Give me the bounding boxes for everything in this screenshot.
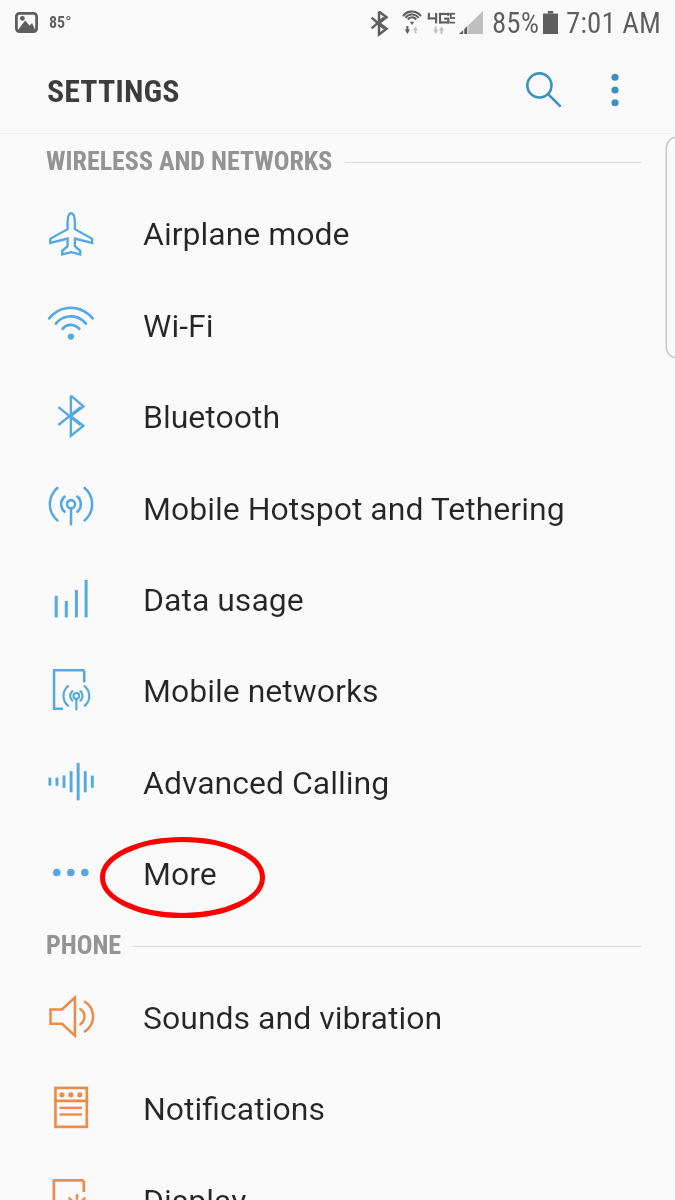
staticText: Data usage <box>143 581 304 619</box>
button[interactable]: Bluetooth <box>0 371 675 462</box>
staticText: Advanced Calling <box>143 764 390 802</box>
button[interactable]: More <box>0 828 675 919</box>
staticText: Wi-Fi <box>143 307 214 345</box>
button[interactable]: Notifications <box>0 1063 675 1154</box>
staticText: 7:01 AM <box>566 6 662 40</box>
staticText: PHONE <box>46 930 122 960</box>
staticText: More <box>143 855 217 893</box>
button[interactable]: Mobile networks <box>0 645 675 736</box>
staticText: SETTINGS <box>47 72 180 110</box>
button[interactable]: Airplane mode <box>0 188 675 279</box>
staticText: Display <box>143 1182 247 1200</box>
staticText: Airplane mode <box>143 215 350 253</box>
button[interactable]: Data usage <box>0 554 675 645</box>
button[interactable]: Search <box>511 57 575 121</box>
staticText: Bluetooth <box>143 398 281 436</box>
staticText: 85% <box>492 6 539 40</box>
staticText: Mobile Hotspot and Tethering <box>143 490 565 528</box>
staticText: WIRELESS AND NETWORKS <box>46 146 333 176</box>
staticText: Notifications <box>143 1090 325 1128</box>
button[interactable]: Display <box>0 1155 675 1200</box>
staticText: Mobile networks <box>143 672 379 710</box>
button[interactable]: Mobile Hotspot and Tethering <box>0 463 675 554</box>
staticText: 85° <box>49 13 72 32</box>
button[interactable]: Wi-Fi <box>0 280 675 371</box>
button[interactable]: Advanced Calling <box>0 737 675 828</box>
button[interactable]: More options <box>583 58 647 122</box>
button[interactable]: Sounds and vibration <box>0 972 675 1063</box>
staticText: Sounds and vibration <box>143 999 443 1037</box>
